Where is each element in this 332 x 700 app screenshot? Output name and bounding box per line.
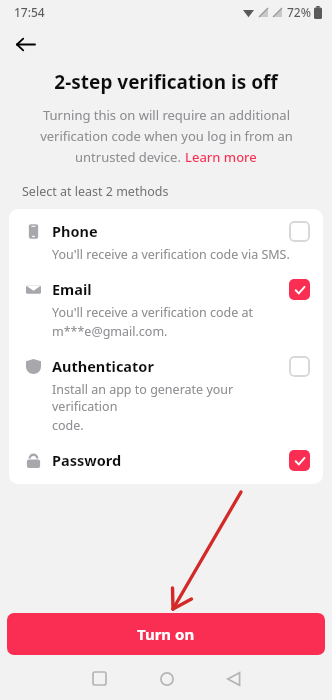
- staticText: Learn more: [185, 148, 257, 166]
- staticText: Select at least 2 methods: [22, 183, 169, 200]
- button[interactable]: Turn on: [7, 613, 325, 655]
- button[interactable]: Authenticator: [9, 355, 323, 436]
- button[interactable]: Not selected: [289, 356, 310, 377]
- button[interactable]: Recents: [78, 657, 121, 700]
- button[interactable]: Back: [7, 26, 43, 62]
- button[interactable]: Selected: [289, 279, 310, 300]
- staticText: 2-step verification is off: [14, 69, 318, 95]
- staticText: Phone: [52, 221, 98, 241]
- staticText: 72%: [287, 4, 311, 20]
- staticText: Turn on: [137, 624, 195, 644]
- staticText: Authenticator: [52, 356, 154, 376]
- staticText: Install an app to generate your verifica…: [52, 381, 297, 415]
- staticText: You'll receive a verification code at: [52, 304, 254, 321]
- staticText: Turning this on will require an addition…: [43, 106, 290, 124]
- button[interactable]: Back: [212, 657, 255, 700]
- staticText: Email: [52, 279, 92, 299]
- staticText: untrusted device.: [75, 148, 185, 166]
- staticText: You'll receive a verification code via S…: [52, 246, 290, 263]
- button[interactable]: Selected: [289, 450, 310, 471]
- staticText: code.: [52, 417, 84, 434]
- button[interactable]: Not selected: [289, 221, 310, 242]
- button[interactable]: Phone: [9, 220, 323, 265]
- staticText: 17:54: [14, 4, 45, 20]
- staticText: Password: [52, 450, 122, 470]
- staticText: verification code when you log in from a…: [40, 127, 293, 145]
- button[interactable]: Email: [9, 278, 323, 342]
- button[interactable]: Learn more: [185, 148, 257, 166]
- button[interactable]: Password: [9, 449, 323, 471]
- staticText: m***e@gmail.com.: [52, 323, 168, 340]
- button[interactable]: Home: [145, 657, 188, 700]
